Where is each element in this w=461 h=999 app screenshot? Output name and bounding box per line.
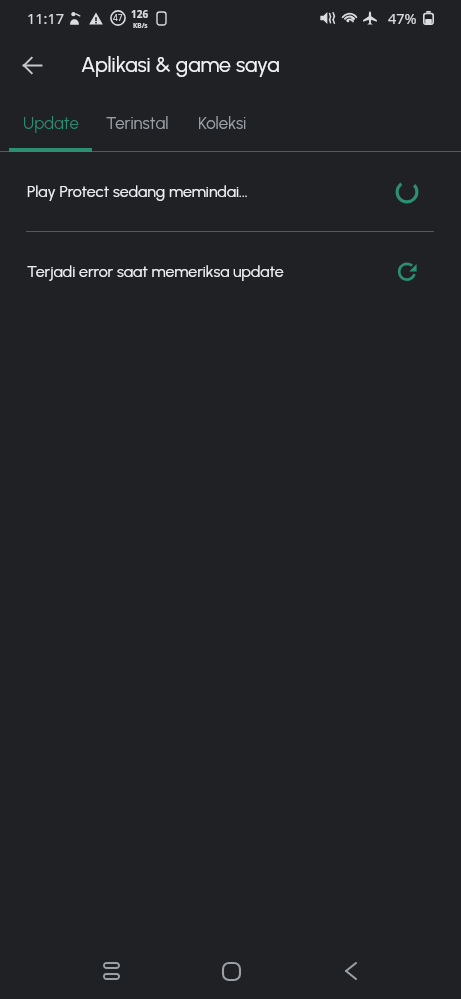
staticText: Update (23, 113, 79, 133)
staticText: Aplikasi & game saya (81, 52, 280, 77)
button[interactable]: Home (206, 946, 256, 996)
staticText: KB/s (133, 21, 148, 30)
staticText: Terinstal (106, 113, 169, 133)
button[interactable]: Terjadi error saat memeriksa update (0, 232, 461, 311)
staticText: 11:17 (27, 8, 65, 28)
staticText: 47 (113, 12, 123, 24)
staticText: Terjadi error saat memeriksa update (27, 262, 395, 281)
staticText: 47% (388, 8, 417, 28)
button[interactable]: Recent apps (86, 946, 136, 996)
button[interactable]: Koleksi (182, 93, 262, 152)
button[interactable]: Play Protect sedang memindai... (0, 152, 461, 231)
staticText: Koleksi (198, 113, 247, 133)
button[interactable]: Terinstal (92, 93, 182, 152)
staticText: Play Protect sedang memindai... (27, 182, 395, 201)
button[interactable]: Back (326, 946, 376, 996)
button[interactable]: Back (10, 43, 54, 87)
staticText: 126 (131, 7, 149, 21)
button[interactable]: Update (9, 93, 92, 152)
